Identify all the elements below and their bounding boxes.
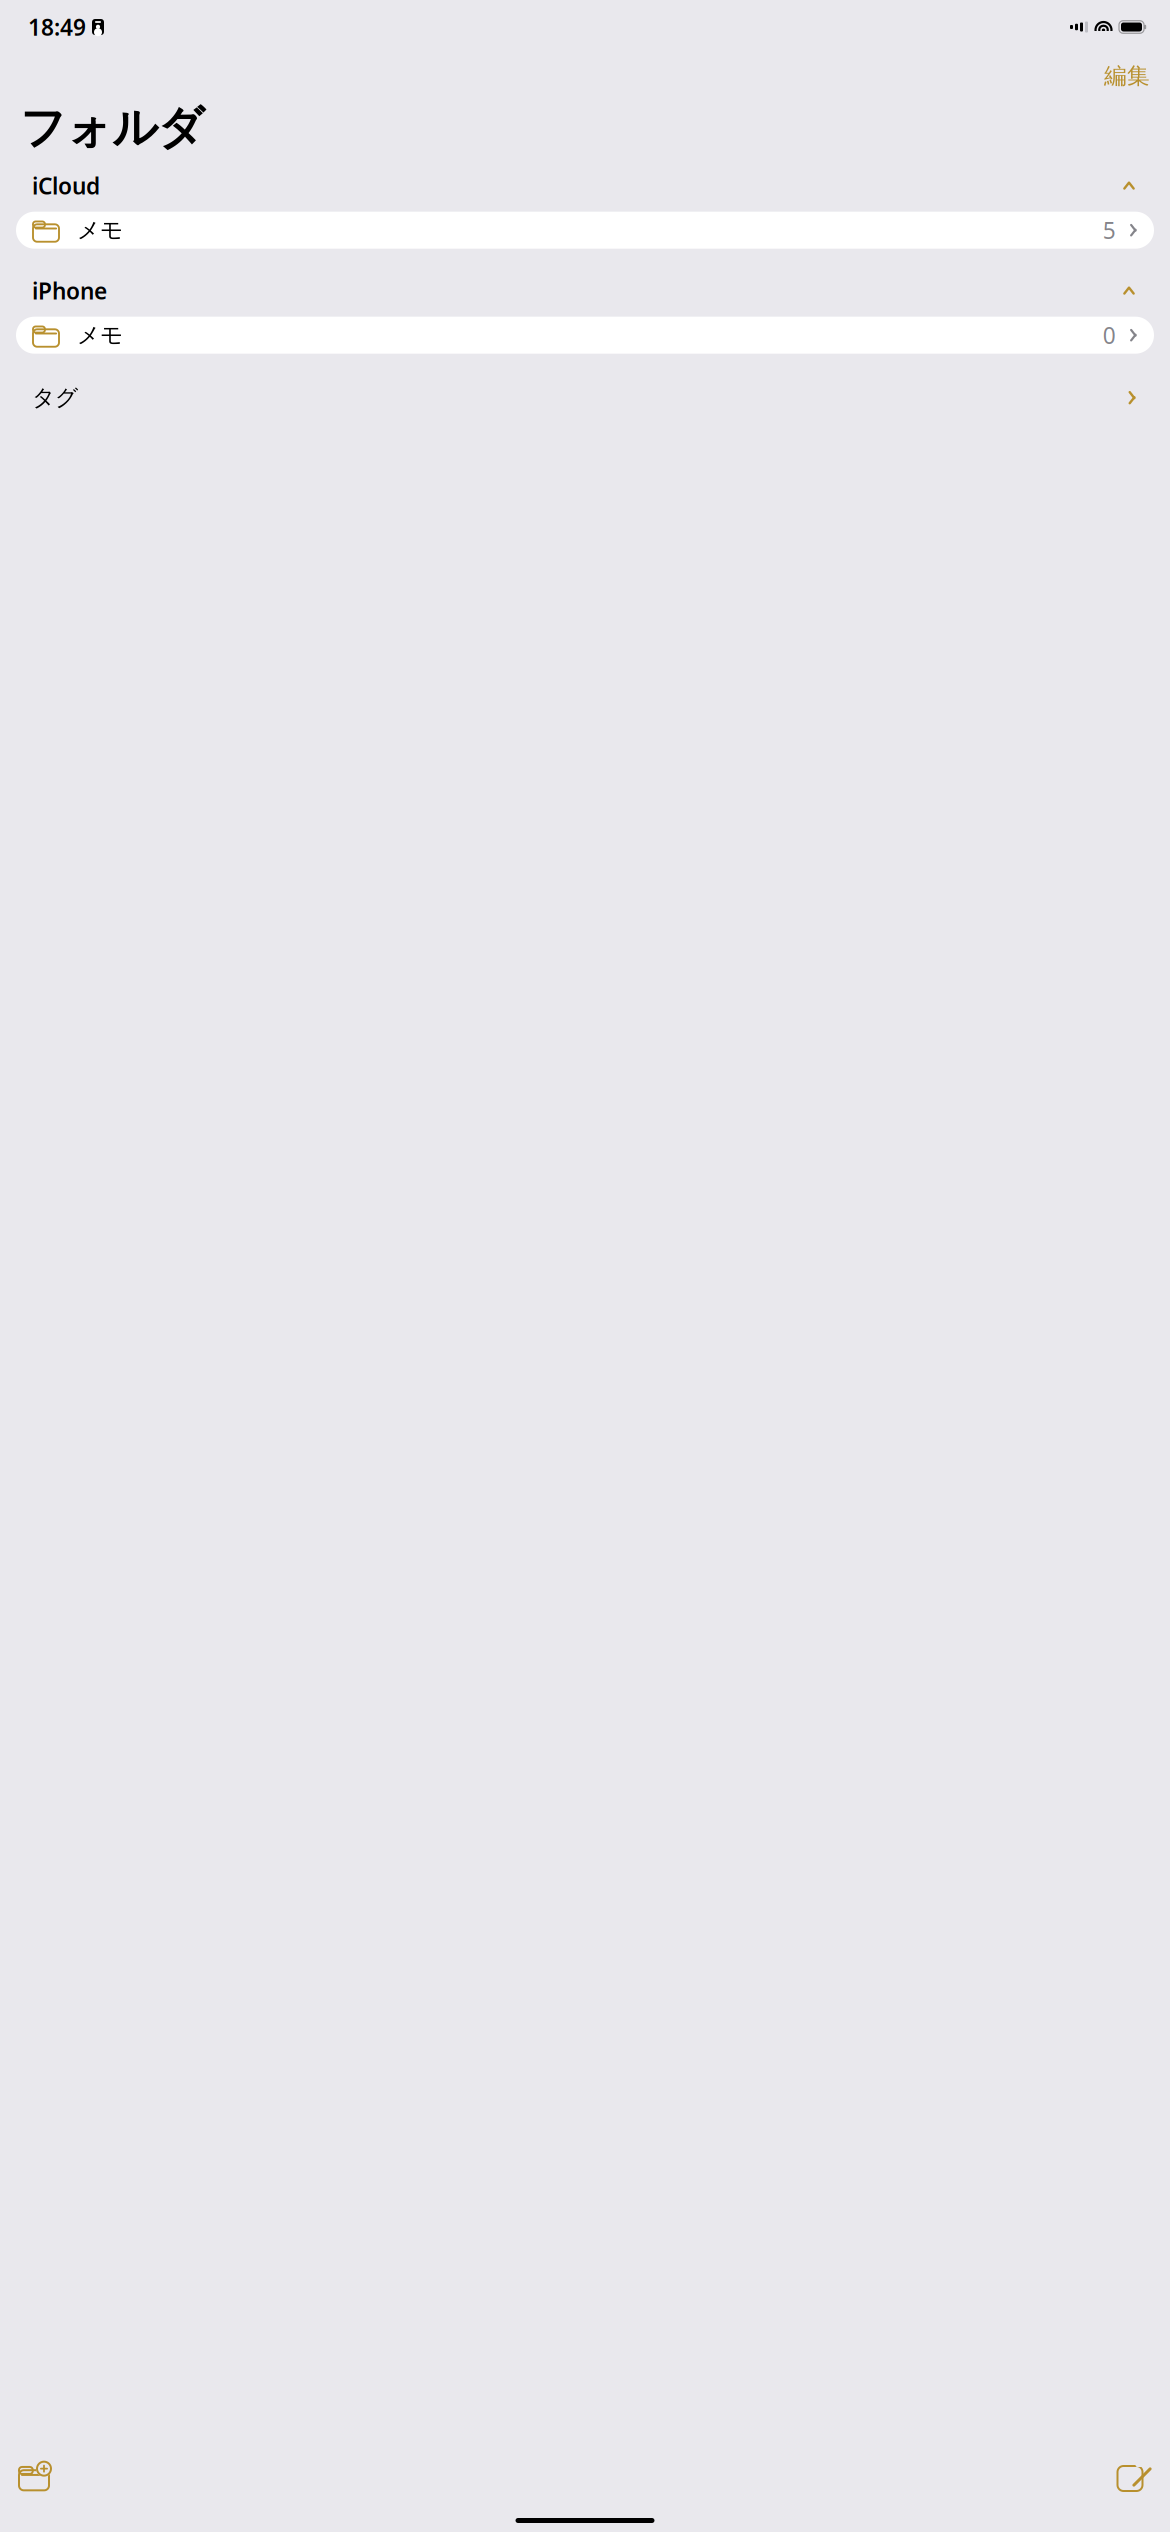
button[interactable]: メモ xyxy=(16,212,1154,249)
button[interactable]: iPhone xyxy=(0,273,1170,309)
button[interactable]: iCloud xyxy=(0,168,1170,204)
button[interactable]: 編集 xyxy=(1088,54,1166,98)
button[interactable]: 新規フォルダ xyxy=(8,2449,66,2499)
staticText: メモ xyxy=(77,321,123,349)
staticText: メモ xyxy=(77,216,123,244)
staticText: 5 xyxy=(1103,215,1116,245)
button[interactable]: メモ xyxy=(16,317,1154,354)
staticText: iPhone xyxy=(32,276,107,306)
staticText: iCloud xyxy=(32,171,100,201)
staticText: タグ xyxy=(32,384,78,412)
staticText: 0 xyxy=(1103,320,1116,350)
staticText: フォルダ xyxy=(20,100,204,156)
button[interactable]: 新規メモ xyxy=(1106,2448,1162,2500)
staticText: 18:49 xyxy=(28,12,86,42)
button[interactable]: タグ xyxy=(0,378,1170,418)
staticText: 編集 xyxy=(1104,62,1150,90)
